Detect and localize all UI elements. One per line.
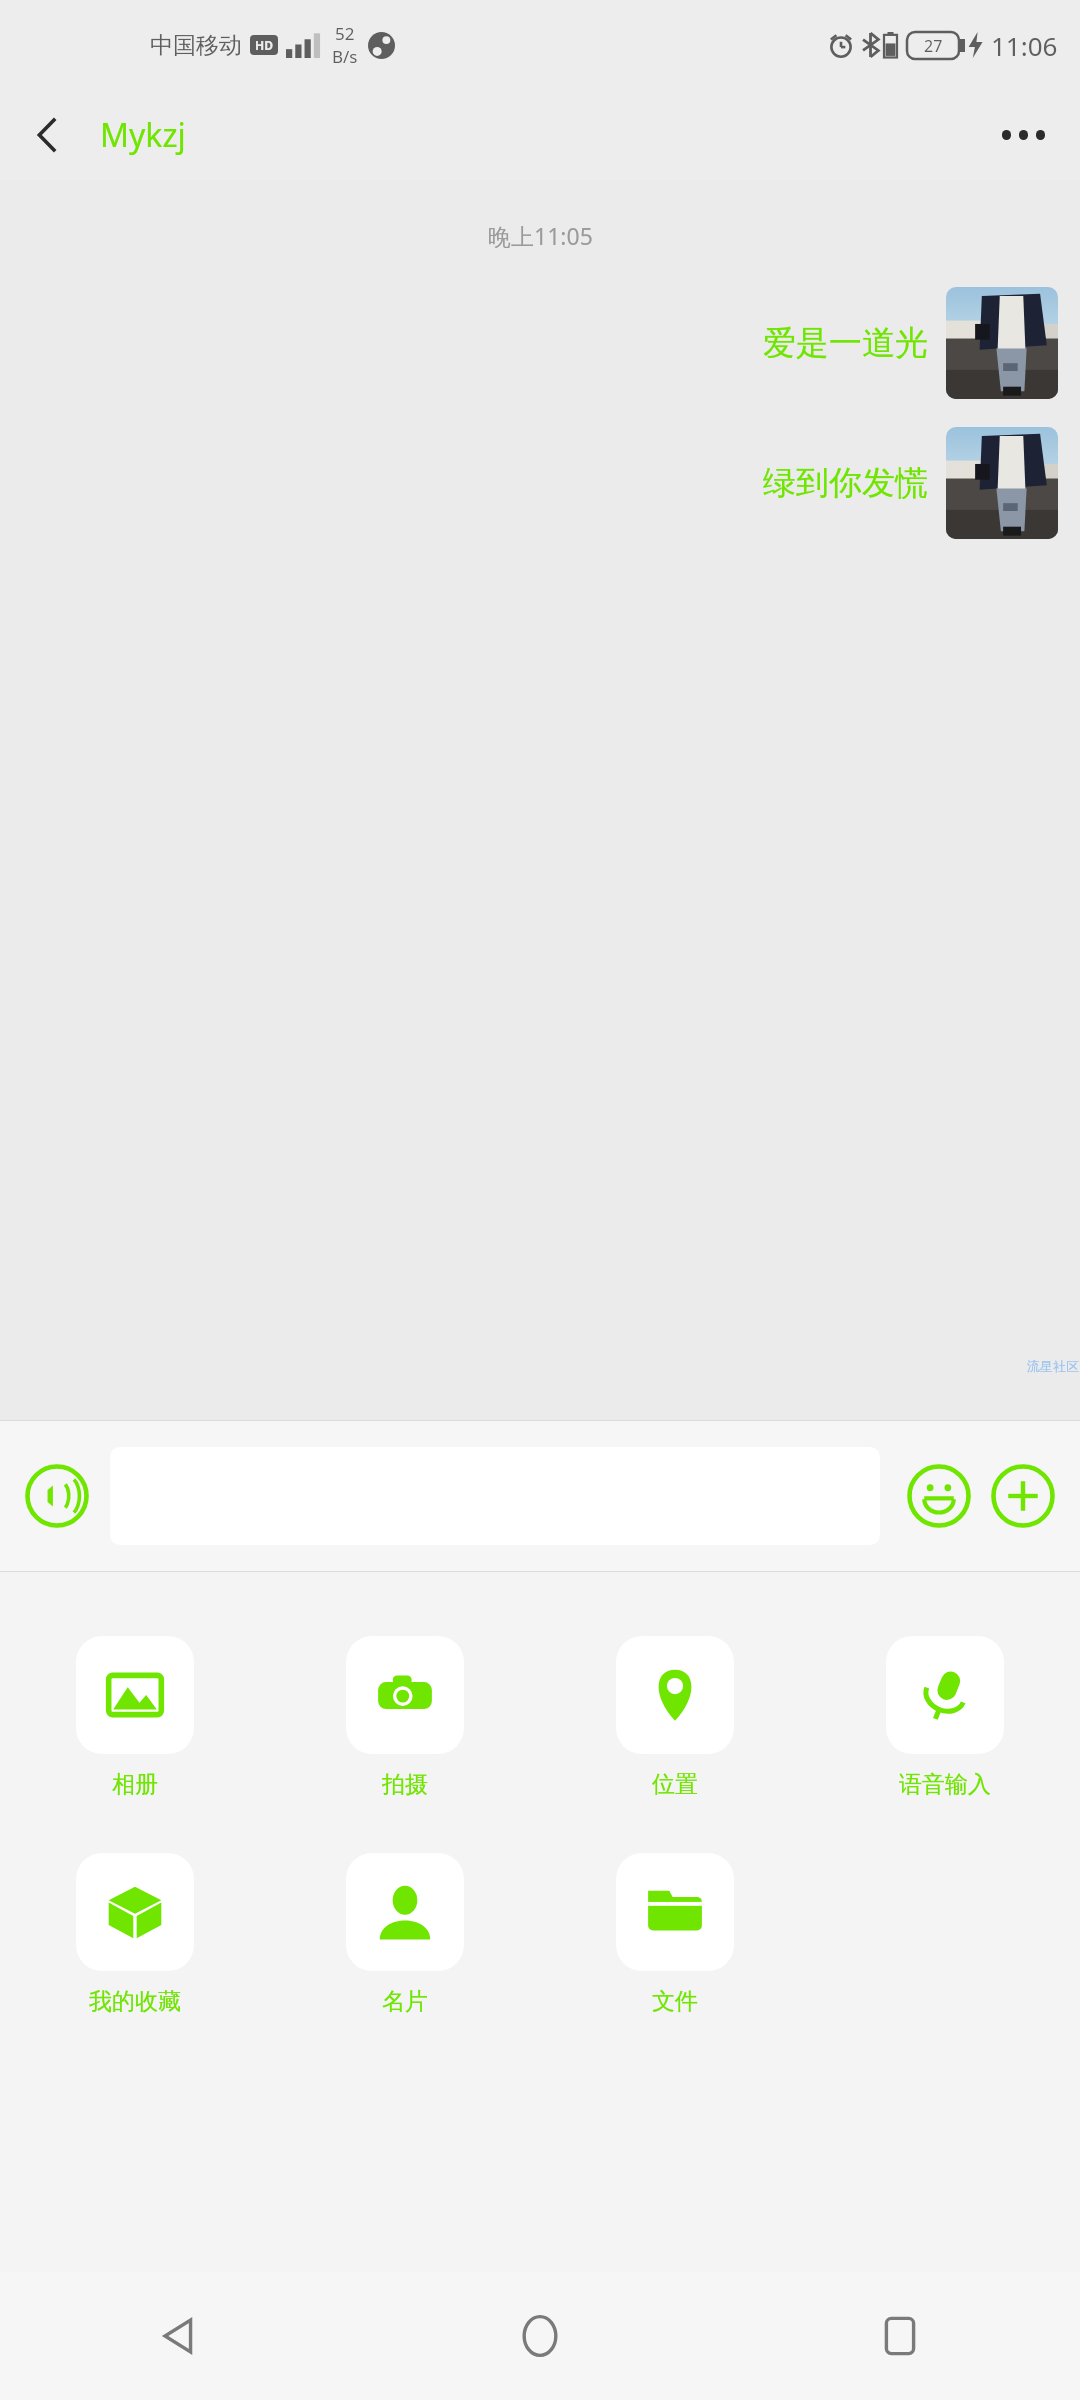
staticText: 文件	[652, 1987, 698, 2016]
button[interactable]: 语音输入	[810, 1636, 1080, 1799]
button[interactable]: Emoji	[902, 1459, 976, 1533]
button[interactable]: Back	[0, 2272, 360, 2400]
button[interactable]: 相册	[0, 1636, 270, 1799]
button[interactable]: 我的收藏	[0, 1853, 270, 2016]
staticText: 中国移动	[150, 31, 242, 60]
button[interactable]: Avatar	[946, 427, 1058, 539]
button[interactable]: 名片	[270, 1853, 540, 2016]
button[interactable]: 爱是一道光	[763, 322, 928, 364]
button[interactable]: More functions	[986, 1459, 1060, 1533]
staticText: 我的收藏	[89, 1987, 181, 2016]
staticText: 流星社区	[1027, 1358, 1079, 1374]
button[interactable]: Home	[360, 2272, 720, 2400]
button[interactable]: Back	[12, 99, 84, 171]
staticText: 爱是一道光	[763, 322, 928, 364]
button[interactable]: 拍摄	[270, 1636, 540, 1799]
staticText: 11:06	[991, 28, 1058, 63]
staticText: 27	[924, 35, 943, 57]
staticText: 相册	[112, 1770, 158, 1799]
button[interactable]: 位置	[540, 1636, 810, 1799]
button[interactable]: 绿到你发慌	[763, 462, 928, 504]
staticText: 52	[335, 22, 355, 45]
staticText: Mykzj	[100, 113, 186, 157]
staticText: 晚上11:05	[488, 220, 593, 251]
button[interactable]: Voice message	[20, 1459, 94, 1533]
staticText: B/s	[332, 45, 358, 68]
staticText: 拍摄	[382, 1770, 428, 1799]
staticText: 绿到你发慌	[763, 462, 928, 504]
staticText: HD	[255, 37, 273, 53]
staticText: 语音输入	[899, 1770, 991, 1799]
button[interactable]: Avatar	[946, 287, 1058, 399]
button[interactable]: Recent apps	[720, 2272, 1080, 2400]
staticText: 名片	[382, 1987, 428, 2016]
button[interactable]: 文件	[540, 1853, 810, 2016]
staticText: 位置	[652, 1770, 698, 1799]
button[interactable]: More options	[986, 98, 1060, 172]
